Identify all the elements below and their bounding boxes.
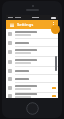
button[interactable] [6, 67, 58, 74]
button[interactable] [6, 83, 58, 92]
button[interactable] [6, 93, 58, 98]
button[interactable] [6, 47, 58, 56]
button[interactable]: Navigation menu [8, 21, 15, 28]
button[interactable]: More options [50, 21, 57, 28]
button[interactable] [6, 39, 58, 46]
button[interactable] [6, 29, 58, 38]
button[interactable]: Add [51, 25, 60, 34]
staticText: Settings [17, 22, 34, 28]
button[interactable] [6, 57, 58, 66]
button[interactable] [6, 75, 58, 82]
